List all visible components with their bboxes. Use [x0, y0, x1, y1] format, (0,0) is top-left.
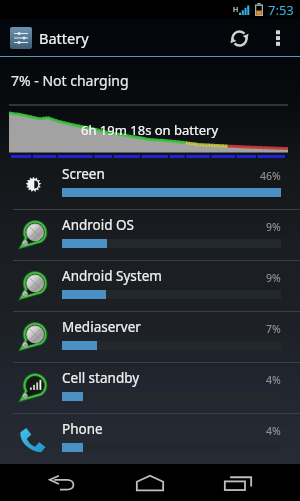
staticText: Battery — [39, 28, 89, 48]
staticText: H — [233, 5, 239, 15]
button[interactable]: Cell standby — [0, 363, 300, 413]
button[interactable]: Screen — [0, 159, 300, 209]
staticText: 9% — [266, 271, 281, 285]
button[interactable]: More options — [262, 19, 294, 57]
button[interactable]: Back — [18, 464, 106, 501]
staticText: 9% — [266, 220, 281, 234]
staticText: Screen — [62, 165, 105, 183]
staticText: 6h 19m 18s on battery — [81, 121, 219, 139]
staticText: 7:53 — [268, 1, 294, 19]
staticText: 7% — [266, 322, 281, 336]
button[interactable]: Android System — [0, 261, 300, 311]
staticText: 46% — [260, 169, 281, 183]
button[interactable]: Mediaserver — [0, 312, 300, 362]
staticText: Android System — [62, 267, 162, 285]
staticText: Cell standby — [62, 369, 140, 387]
staticText: Android OS — [62, 216, 134, 234]
button[interactable]: Recent apps — [194, 464, 282, 501]
staticText: Phone — [62, 420, 103, 438]
button[interactable]: Refresh — [216, 19, 262, 57]
staticText: 4% — [266, 373, 281, 387]
button[interactable]: Home — [106, 464, 194, 501]
button[interactable]: Settings — [10, 27, 32, 49]
staticText: Mediaserver — [62, 318, 141, 336]
staticText: 7% - Not charging — [11, 71, 129, 90]
button[interactable]: Android OS — [0, 210, 300, 260]
button[interactable]: Phone — [0, 414, 300, 464]
staticText: 4% — [266, 424, 281, 438]
